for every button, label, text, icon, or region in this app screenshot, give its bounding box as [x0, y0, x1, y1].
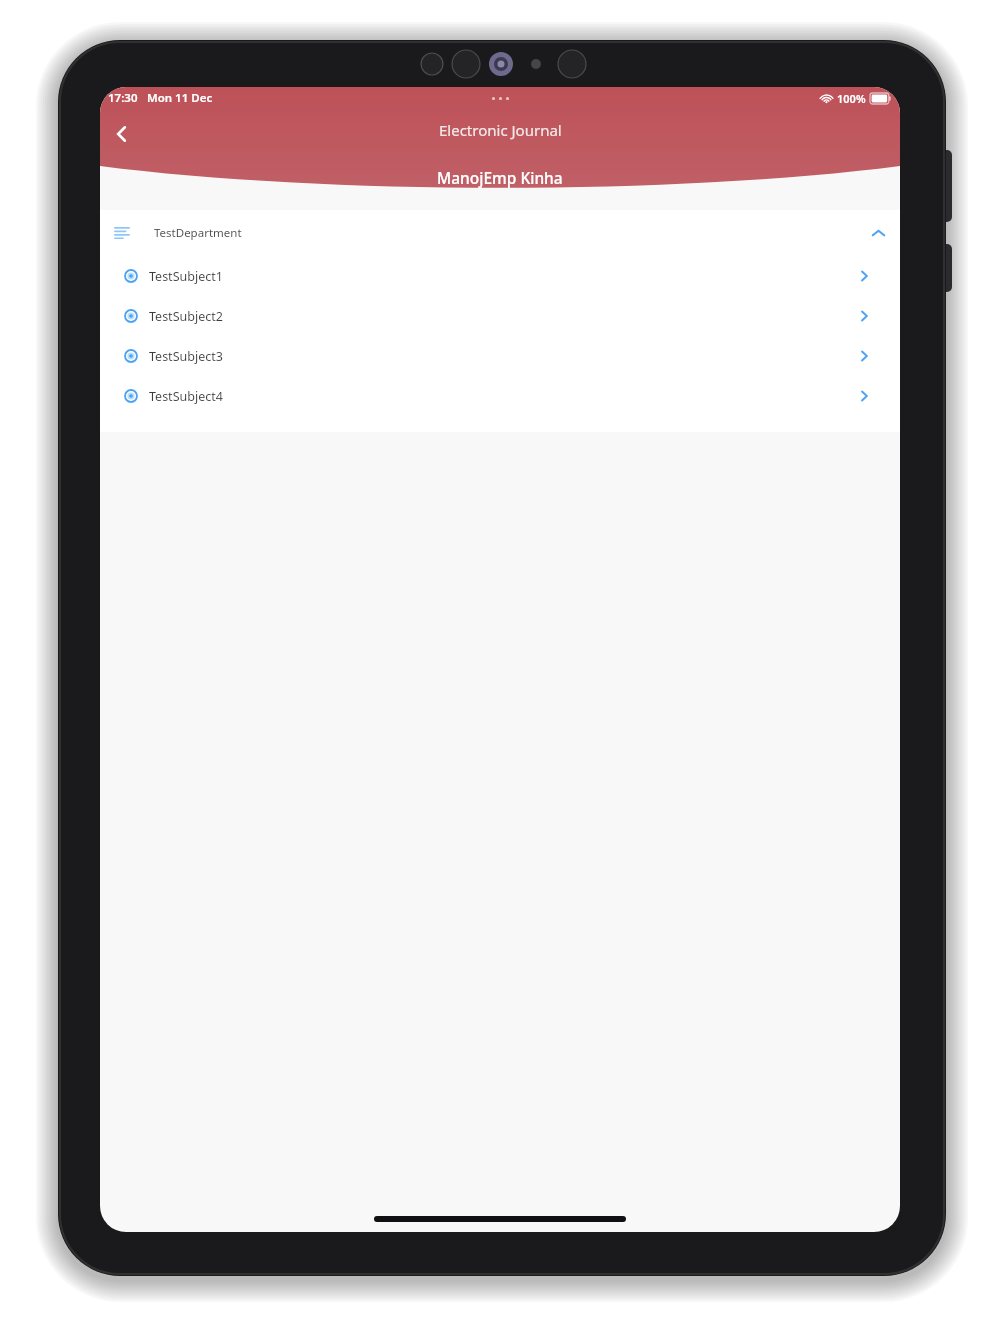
button[interactable]: Back: [102, 114, 142, 154]
staticText: 100%: [837, 91, 866, 106]
button[interactable]: TestDepartment: [100, 210, 900, 256]
staticText: TestSubject2: [149, 308, 223, 325]
button[interactable]: TestSubject1: [100, 256, 900, 296]
staticText: ManojEmp Kinha: [437, 167, 563, 188]
button[interactable]: TestSubject3: [100, 336, 900, 376]
staticText: TestSubject1: [149, 268, 223, 285]
button[interactable]: TestSubject2: [100, 296, 900, 336]
staticText: Electronic Journal: [439, 120, 562, 140]
button[interactable]: TestSubject4: [100, 376, 900, 416]
staticText: TestSubject4: [149, 388, 223, 405]
staticText: TestDepartment: [154, 225, 242, 241]
staticText: Mon 11 Dec: [147, 90, 213, 106]
staticText: TestSubject3: [149, 348, 223, 365]
staticText: 17:30: [108, 90, 138, 106]
